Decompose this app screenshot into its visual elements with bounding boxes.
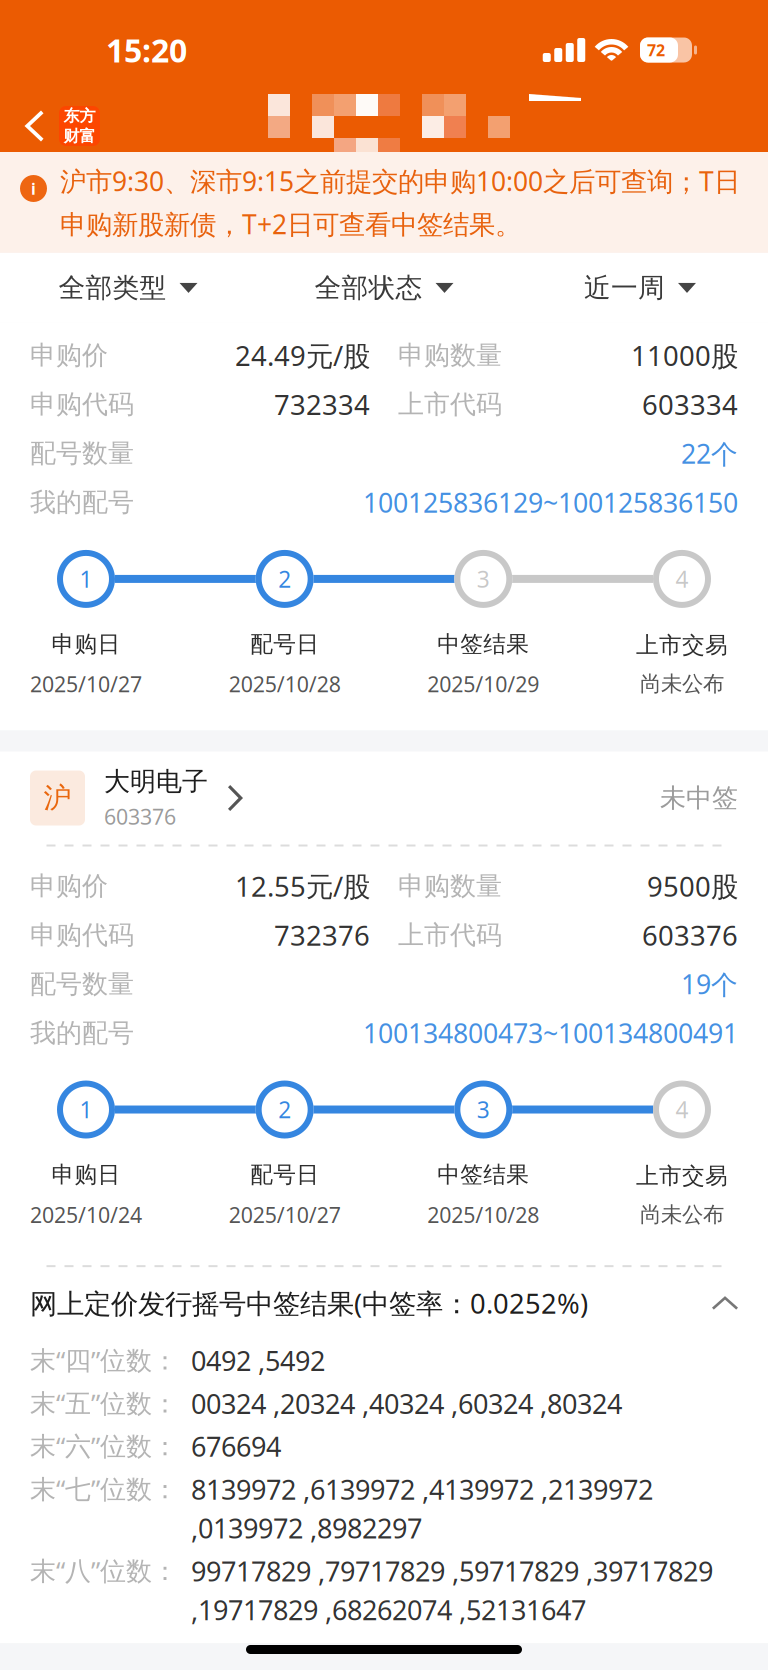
staticText: 上市代码 [398, 388, 502, 421]
staticText: 中签结果 [437, 630, 529, 658]
staticText: 申购数量 [398, 870, 502, 902]
staticText: 19个 [681, 966, 738, 1002]
button[interactable]: 全部类型 [0, 253, 256, 323]
staticText: 末“五”位数： [30, 1385, 178, 1420]
staticText: 732334 [274, 386, 370, 423]
staticText: 12.55元/股 [235, 867, 370, 905]
staticText: 大明电子 [104, 765, 208, 798]
staticText: 配号日 [250, 1160, 319, 1189]
button[interactable]: 全部状态 [256, 253, 512, 323]
staticText: 末“八”位数： [30, 1552, 178, 1588]
button[interactable]: 近一周 [512, 253, 768, 323]
staticText: 603334 [642, 386, 738, 423]
staticText: 我的配号 [30, 486, 134, 519]
staticText: 申购日 [51, 1160, 120, 1189]
staticText: 1 [79, 1094, 92, 1125]
staticText: 4 [675, 1094, 688, 1125]
staticText: 尚未公布 [640, 1201, 724, 1228]
staticText: 732376 [274, 916, 370, 954]
staticText: 网上定价发行摇号中签结果(中签率：0.0252%) [30, 1284, 588, 1322]
staticText: 3 [477, 1094, 490, 1125]
staticText: 申购代码 [30, 919, 134, 951]
staticText: 配号数量 [30, 437, 134, 470]
button[interactable]: 沪 [30, 770, 738, 825]
staticText: 4 [675, 563, 688, 594]
staticText: 676694 [191, 1428, 281, 1465]
staticText: 00324 ,20324 ,40324 ,60324 ,80324 [191, 1385, 622, 1422]
staticText: 财富 [63, 126, 95, 146]
staticText: 申购数量 [398, 339, 502, 372]
button[interactable]: Back [0, 100, 106, 152]
staticText: 0492 ,5492 [191, 1342, 325, 1379]
staticText: 末“七”位数： [30, 1471, 178, 1506]
staticText: 末“四”位数： [30, 1342, 178, 1377]
staticText: 24.49元/股 [235, 337, 370, 374]
staticText: 全部类型 [58, 271, 166, 305]
staticText: 沪市9:30、深市9:15之前提交的申购10:00之后可查询；T日 [60, 163, 740, 199]
staticText: 11000股 [631, 337, 738, 374]
staticText: 3 [477, 563, 490, 594]
staticText: 未中签 [660, 782, 738, 814]
staticText: ,19717829 ,68262074 ,52131647 [191, 1591, 586, 1628]
staticText: ,0139972 ,8982297 [191, 1510, 422, 1546]
staticText: 22个 [681, 435, 738, 472]
staticText: 100134800473~100134800491 [363, 1015, 738, 1051]
staticText: 8139972 ,6139972 ,4139972 ,2139972 [191, 1471, 653, 1508]
staticText: 100125836129~100125836150 [363, 484, 738, 521]
staticText: 2025/10/27 [30, 669, 142, 699]
staticText: 9500股 [647, 867, 738, 905]
staticText: 15:20 [106, 28, 187, 72]
staticText: 中签结果 [437, 1160, 529, 1189]
staticText: 上市交易 [636, 1162, 728, 1190]
staticText: 99717829 ,79717829 ,59717829 ,39717829 [191, 1552, 713, 1589]
staticText: 东方 [63, 106, 95, 126]
staticText: 603376 [642, 916, 738, 954]
staticText: 2 [278, 563, 291, 594]
staticText: 603376 [104, 802, 176, 831]
staticText: 2025/10/28 [229, 669, 341, 699]
staticText: 申购代码 [30, 388, 134, 421]
staticText: 申购日 [51, 630, 120, 658]
staticText: 申购新股新债，T+2日可查看中签结果。 [60, 206, 521, 242]
staticText: 2025/10/29 [427, 669, 539, 699]
staticText: 沪 [43, 780, 71, 816]
staticText: 2025/10/27 [229, 1200, 341, 1229]
staticText: i [31, 178, 36, 199]
staticText: 2025/10/28 [427, 1200, 539, 1229]
staticText: 申购价 [30, 339, 108, 372]
staticText: 申购价 [30, 870, 108, 902]
staticText: 72 [647, 39, 665, 61]
staticText: 尚未公布 [640, 671, 724, 697]
staticText: 全部状态 [314, 271, 422, 305]
staticText: 我的配号 [30, 1017, 134, 1049]
button[interactable]: 网上定价发行摇号中签结果(中签率：0.0252%) [30, 1267, 738, 1339]
staticText: 上市代码 [398, 919, 502, 951]
staticText: 末“六”位数： [30, 1428, 178, 1463]
staticText: 配号数量 [30, 968, 134, 1000]
staticText: 上市交易 [636, 631, 728, 660]
staticText: 1 [79, 563, 92, 594]
staticText: 2 [278, 1094, 291, 1125]
staticText: 配号日 [250, 630, 319, 658]
staticText: 近一周 [584, 271, 665, 305]
staticText: 2025/10/24 [30, 1200, 142, 1229]
